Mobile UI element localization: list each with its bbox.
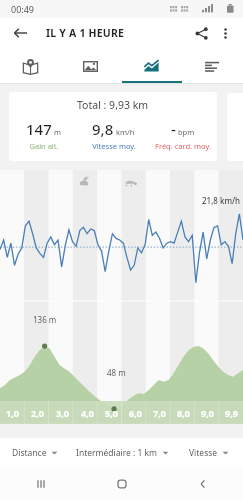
staticText: 9,9 (225, 407, 238, 419)
button[interactable]: More options (213, 21, 237, 45)
staticText: 48 m (107, 367, 126, 378)
staticText: 8,0 (177, 407, 190, 419)
button[interactable]: Back (9, 22, 31, 44)
staticText: Total : 9,93 km (77, 98, 149, 112)
button[interactable]: Share (189, 21, 213, 45)
staticText: 6,0 (129, 407, 142, 419)
button[interactable]: Charts (121, 48, 182, 84)
staticText: 9,8 (92, 119, 114, 139)
staticText: 1,0 (6, 407, 19, 419)
button[interactable]: Map (0, 48, 60, 84)
staticText: 147 (26, 119, 52, 139)
button[interactable]: Home (81, 467, 162, 500)
button[interactable]: Total : 9,93 km (9, 92, 217, 161)
button[interactable]: Back (162, 467, 243, 500)
staticText: 00:49 (11, 3, 35, 15)
staticText: Intermédiaire : 1 km (76, 447, 158, 459)
button[interactable]: Distance (0, 438, 70, 467)
staticText: 9,0 (201, 407, 214, 419)
staticText: 5,0 (105, 407, 118, 419)
staticText: 2,0 (31, 407, 44, 419)
staticText: Distance (12, 447, 47, 459)
button[interactable]: Intermédiaire : 1 km (70, 438, 174, 467)
staticText: bpm (178, 127, 195, 137)
staticText: Fréq. card. moy. (155, 141, 211, 151)
button[interactable]: Vitesse (174, 438, 243, 467)
button[interactable]: Photos (60, 48, 121, 84)
staticText: IL Y A 1 HEURE (46, 26, 125, 40)
staticText: - (171, 119, 176, 139)
staticText: 7,0 (153, 407, 166, 419)
staticText: m (54, 127, 62, 137)
button[interactable]: Recents (0, 467, 81, 500)
staticText: Gain alt. (29, 141, 59, 151)
button[interactable]: Details (182, 48, 243, 84)
staticText: 136 m (33, 314, 57, 325)
staticText: Vitesse (189, 447, 218, 459)
staticText: 3,0 (56, 407, 69, 419)
staticText: 21,8 km/h (202, 195, 241, 206)
staticText: Vitesse moy. (92, 141, 136, 151)
staticText: km/h (116, 127, 135, 137)
staticText: 4,0 (81, 407, 94, 419)
